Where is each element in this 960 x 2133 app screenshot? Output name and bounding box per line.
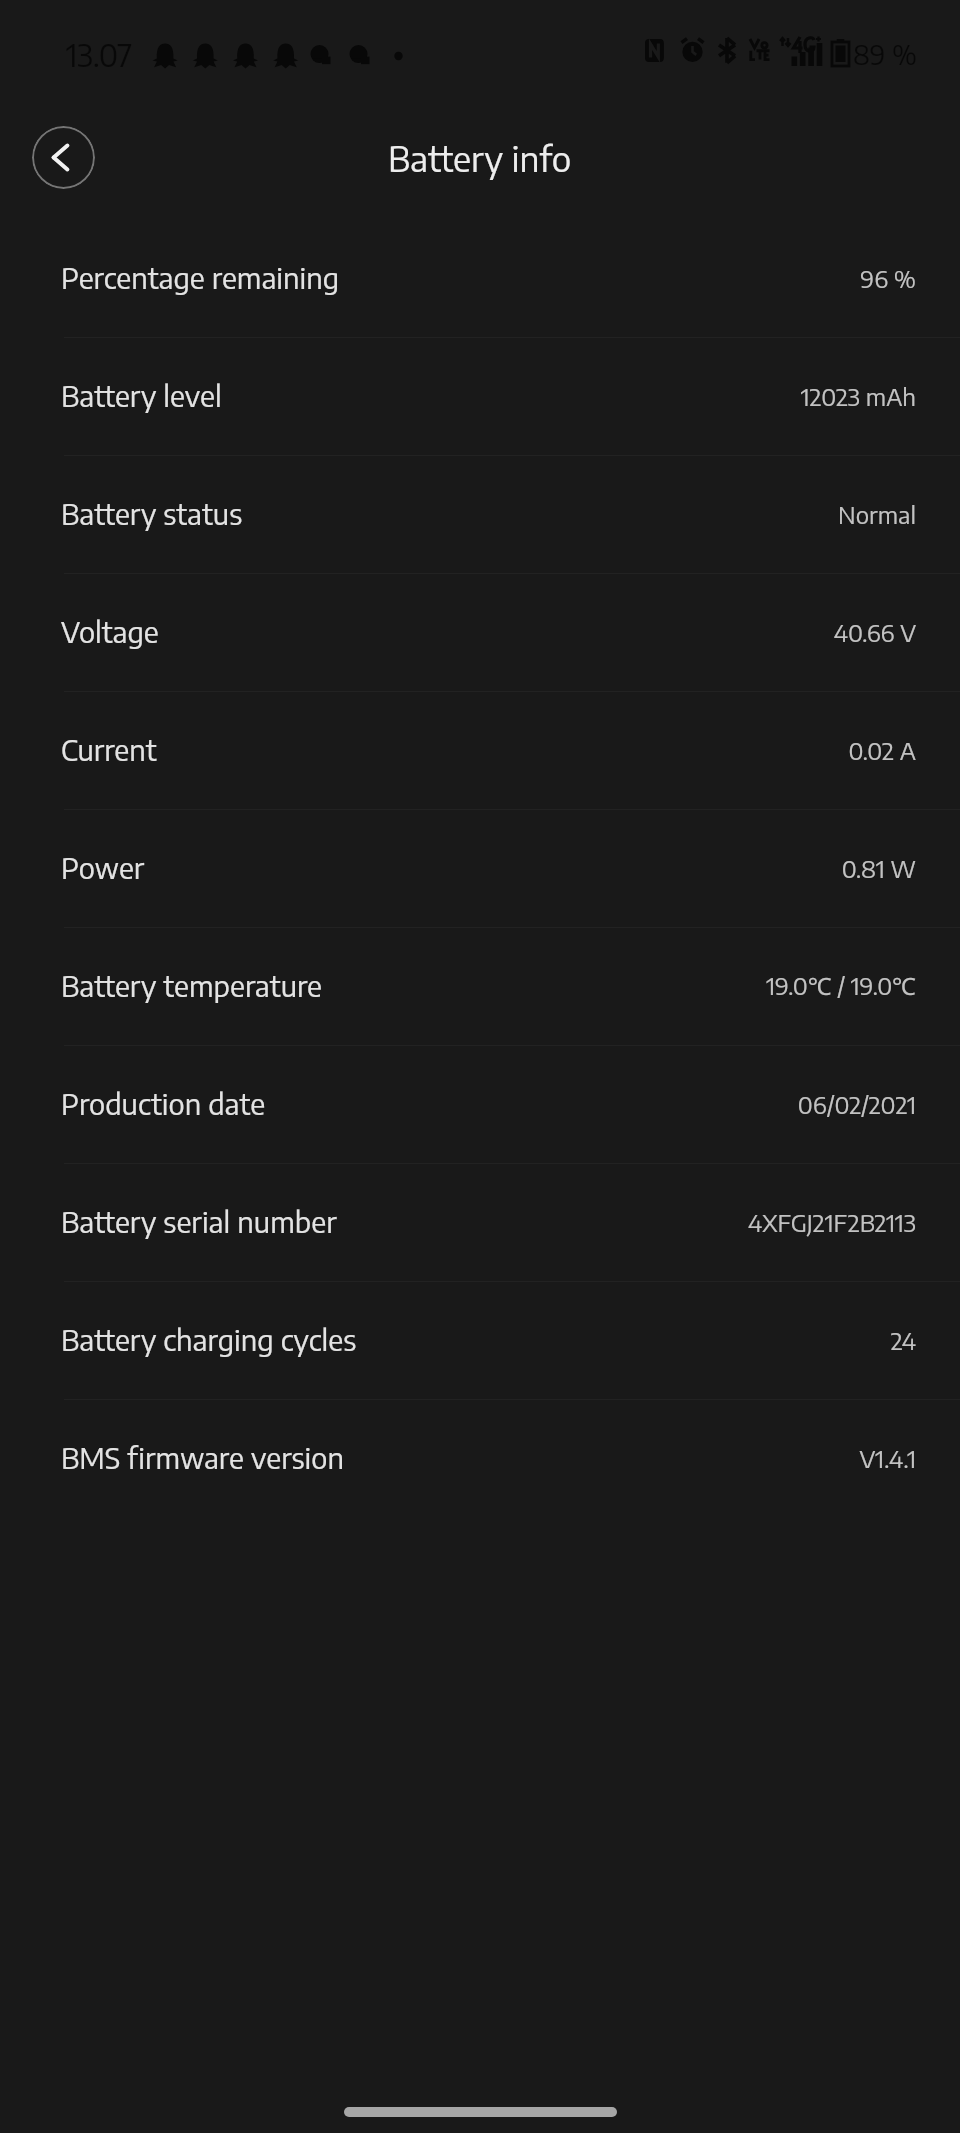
staticText: Production date bbox=[61, 1085, 266, 1121]
staticText: 4XFGJ21F2B2113 bbox=[747, 1207, 916, 1237]
staticText: 24 bbox=[890, 1325, 916, 1355]
staticText: Battery temperature bbox=[61, 967, 323, 1003]
staticText: Percentage remaining bbox=[61, 259, 340, 295]
button[interactable]: Production date bbox=[0, 1046, 960, 1163]
staticText: 19.0℃ / 19.0℃ bbox=[766, 969, 916, 1002]
button[interactable]: Battery charging cycles bbox=[0, 1282, 960, 1399]
staticText: Current bbox=[61, 731, 157, 767]
button[interactable]: Battery status bbox=[0, 456, 960, 573]
staticText: Normal bbox=[838, 499, 916, 529]
staticText: 96 % bbox=[860, 263, 916, 293]
staticText: BMS firmware version bbox=[61, 1439, 344, 1475]
staticText: Battery charging cycles bbox=[61, 1321, 357, 1357]
button[interactable]: Current bbox=[0, 692, 960, 809]
button[interactable]: Back bbox=[32, 126, 95, 189]
staticText: V1.4.1 bbox=[859, 1443, 916, 1473]
staticText: Battery status bbox=[61, 495, 243, 531]
staticText: Battery level bbox=[61, 377, 222, 413]
staticText: 0.02 A bbox=[848, 735, 916, 765]
button[interactable]: Voltage bbox=[0, 574, 960, 691]
staticText: 06/02/2021 bbox=[797, 1089, 916, 1119]
staticText: 0.81 W bbox=[841, 853, 916, 883]
staticText: Battery info bbox=[388, 136, 572, 180]
button[interactable]: BMS firmware version bbox=[0, 1400, 960, 1517]
staticText: Power bbox=[61, 849, 145, 885]
staticText: 89 % bbox=[853, 37, 917, 71]
staticText: 13.07 bbox=[66, 35, 133, 74]
button[interactable]: Battery serial number bbox=[0, 1164, 960, 1281]
staticText: 40.66 V bbox=[833, 617, 916, 647]
staticText: Battery serial number bbox=[61, 1203, 337, 1239]
button[interactable]: Battery temperature bbox=[0, 928, 960, 1045]
button[interactable]: Percentage remaining bbox=[0, 220, 960, 337]
staticText: 12023 mAh bbox=[800, 381, 916, 411]
button[interactable]: Battery level bbox=[0, 338, 960, 455]
button[interactable]: Power bbox=[0, 810, 960, 927]
staticText: Voltage bbox=[61, 613, 159, 649]
